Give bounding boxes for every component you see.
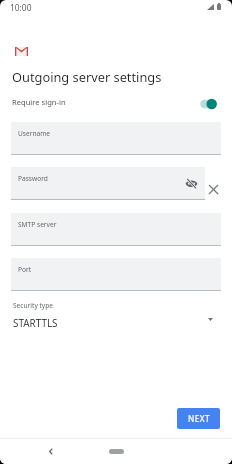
button[interactable]: Clear password [205, 181, 222, 198]
staticText: SMTP server [18, 220, 57, 229]
button[interactable]: Home [104, 444, 128, 458]
button[interactable]: Security type [11, 298, 221, 330]
staticText: Username [18, 129, 51, 138]
button[interactable]: SMTP server [11, 213, 221, 246]
staticText: Port [18, 265, 32, 274]
button[interactable]: Require sign-in toggle [193, 95, 220, 113]
staticText: NEXT [188, 413, 210, 424]
staticText: Password [18, 174, 48, 183]
button[interactable]: Username [11, 122, 221, 155]
button[interactable]: Show password [184, 176, 199, 191]
button[interactable]: Back [42, 443, 59, 460]
staticText: Security type [13, 301, 53, 310]
button[interactable]: Port [11, 258, 221, 291]
staticText: Outgoing server settings [12, 68, 162, 85]
button[interactable]: NEXT [177, 408, 220, 429]
button[interactable]: Password [11, 167, 205, 200]
staticText: Require sign-in [12, 97, 66, 107]
staticText: 10:00 [10, 2, 32, 13]
staticText: STARTTLS [13, 316, 58, 329]
